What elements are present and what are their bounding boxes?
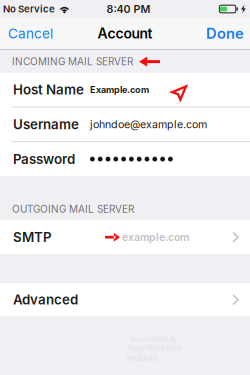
staticText: 8:40 PM [106,2,150,15]
staticText: Host Name [13,82,84,98]
staticText: OUTGOING MAIL SERVER [12,203,134,215]
staticText: Example.com [90,84,149,95]
button[interactable]: SMTP [0,220,250,254]
staticText: INCOMING MAIL SERVER [12,56,133,68]
staticText: Screenshot By [130,335,177,343]
button[interactable]: Advanced [0,283,250,316]
staticText: Cancel [8,25,53,42]
staticText: Account [97,25,152,42]
staticText: Advanced [13,292,78,308]
button[interactable]: Cancel [0,18,61,49]
staticText: Password [13,151,75,167]
staticText: No Service [3,3,55,15]
staticText: Username [13,116,79,132]
staticText: Done [206,25,244,42]
staticText: SMTP [13,229,52,245]
staticText: YourWebHost website [126,343,181,363]
staticText: example.com [122,231,189,243]
button[interactable]: Done [198,18,250,49]
staticText: johndoe@example.com [90,118,207,131]
